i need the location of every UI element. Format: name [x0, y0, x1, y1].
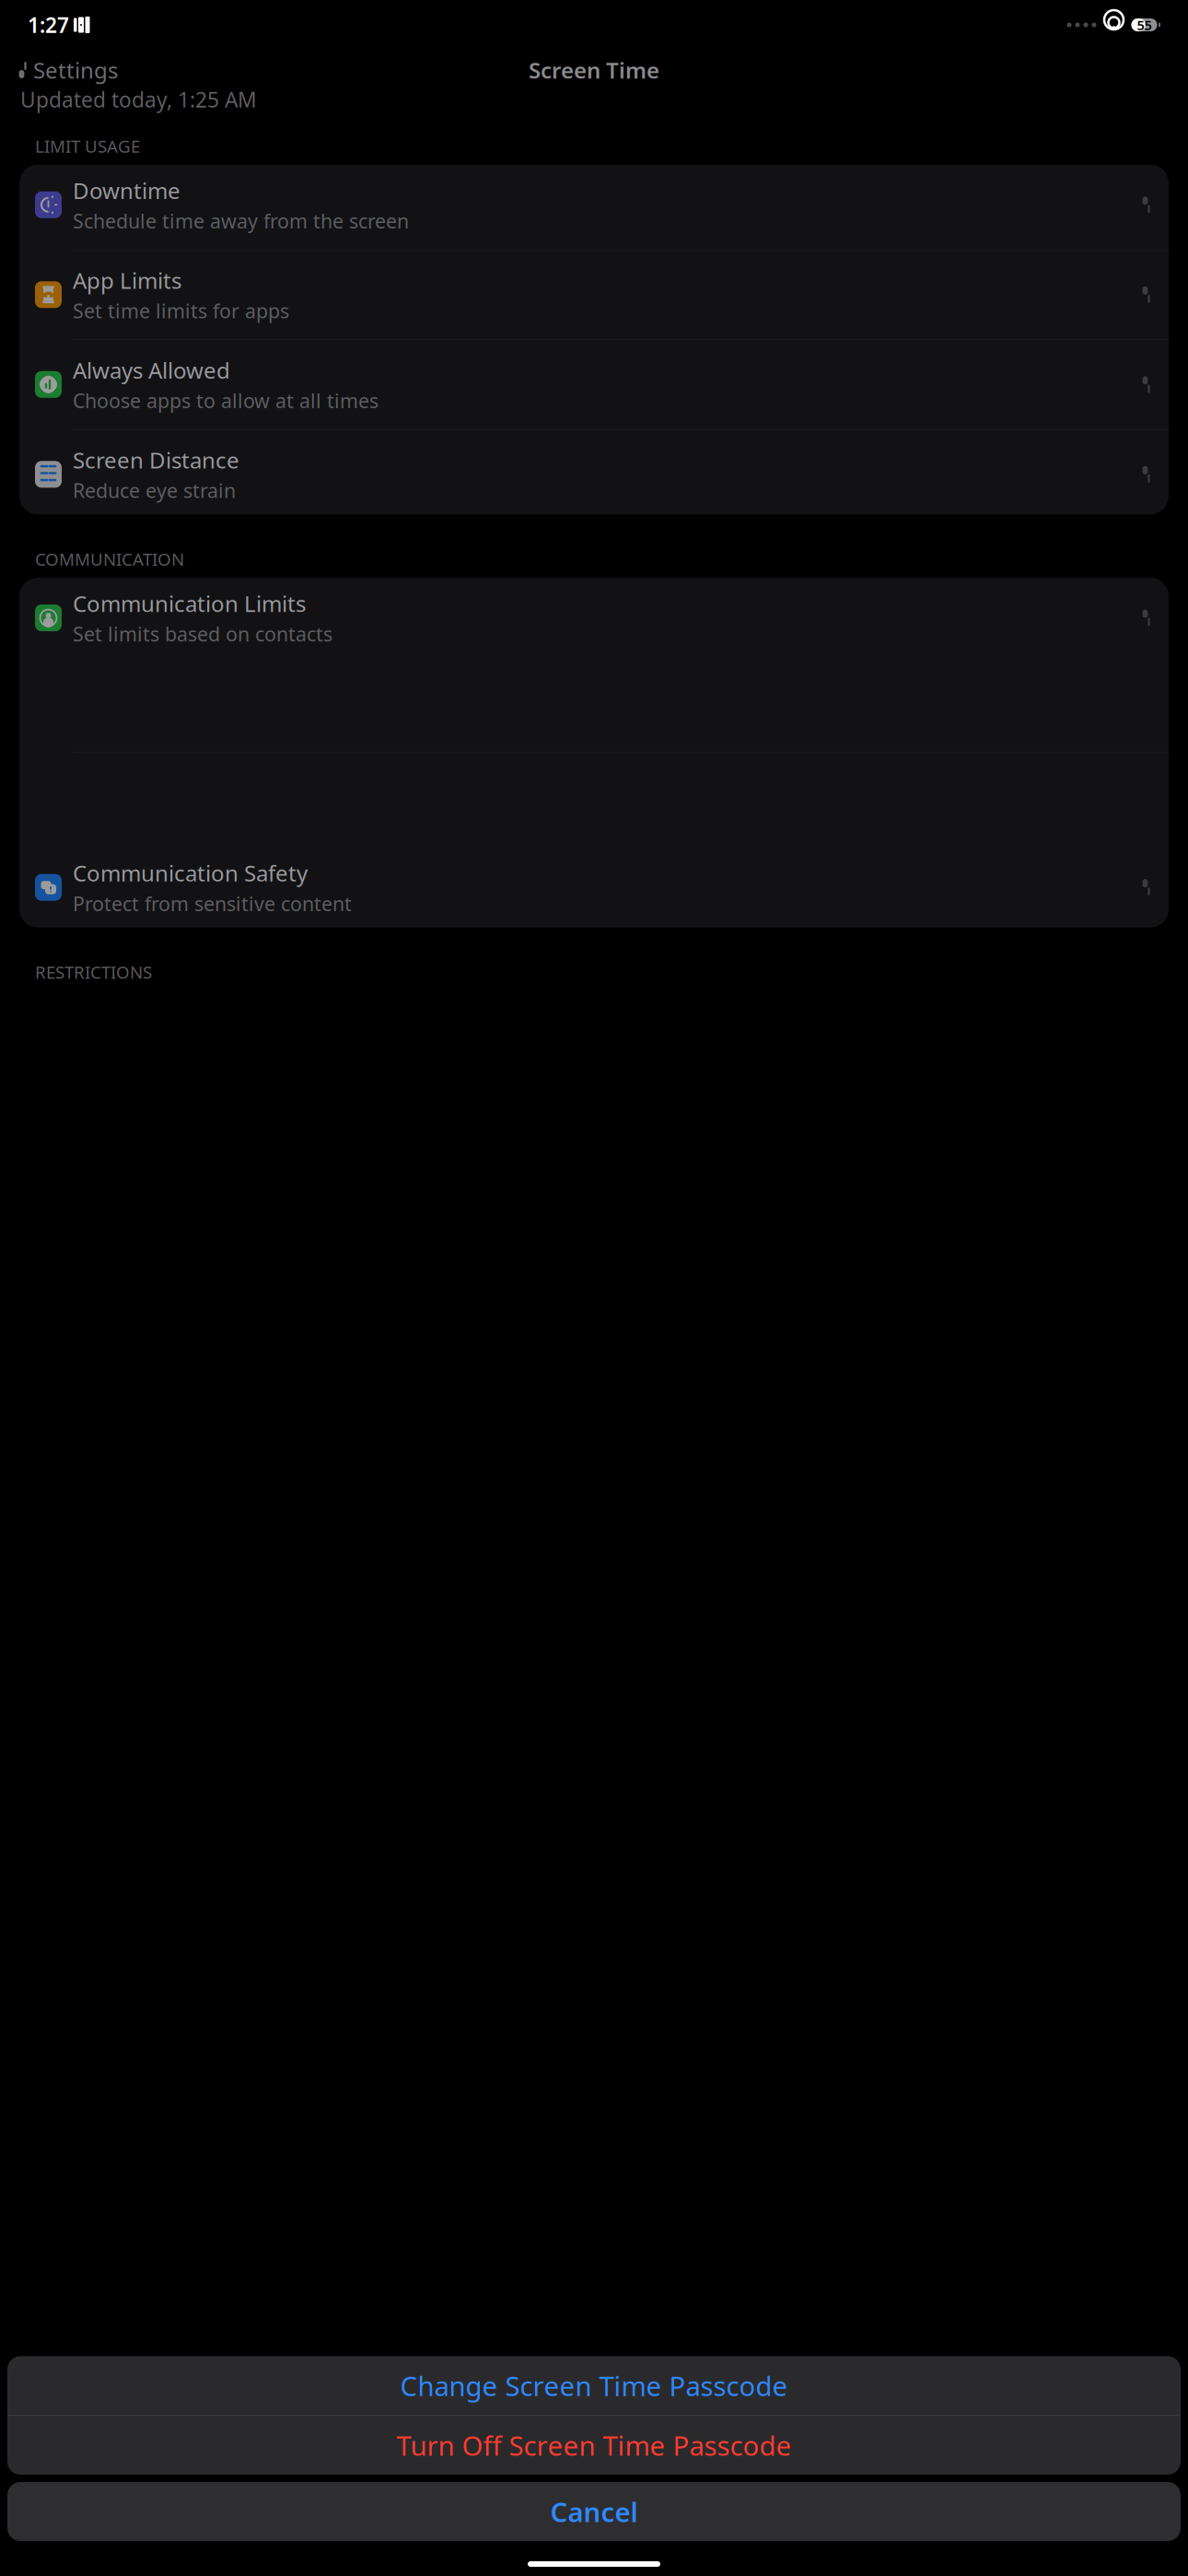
staticText: Change Screen Time Passcode — [400, 2368, 788, 2404]
staticText: Schedule time away from the screen — [73, 208, 409, 234]
staticText: COMMUNICATION — [35, 548, 184, 570]
staticText: RESTRICTIONS — [35, 961, 152, 984]
button[interactable]: Change Screen Time Passcode — [7, 2356, 1181, 2415]
button[interactable]: Always Allowed — [19, 344, 1169, 425]
staticText: Communication Safety — [73, 858, 308, 888]
button[interactable]: Communication Limits — [19, 578, 1169, 658]
staticText: Screen Time — [529, 55, 659, 85]
staticText: LIMIT USAGE — [35, 135, 140, 157]
staticText: Protect from sensitive content — [73, 890, 352, 916]
staticText: Settings — [33, 55, 118, 85]
button[interactable]: Settings — [6, 48, 131, 92]
staticText: Updated today, 1:25 AM — [20, 86, 257, 113]
staticText: Set limits based on contacts — [73, 621, 332, 647]
button[interactable]: Screen Distance — [19, 434, 1169, 514]
staticText: 55 — [1137, 16, 1152, 34]
staticText: Communication Limits — [73, 589, 306, 618]
staticText: Always Allowed — [73, 355, 230, 385]
button[interactable]: Communication Safety — [19, 847, 1169, 927]
staticText: Reduce eye strain — [73, 477, 236, 503]
staticText: Downtime — [73, 176, 181, 205]
staticText: 1:27 — [28, 11, 69, 39]
staticText: Set time limits for apps — [73, 298, 289, 324]
button[interactable]: App Limits — [19, 255, 1169, 335]
staticText: Screen Distance — [73, 445, 239, 475]
staticText: Turn Off Screen Time Passcode — [396, 2427, 792, 2463]
button[interactable]: Downtime — [19, 165, 1169, 245]
staticText: App Limits — [73, 266, 181, 295]
staticText: Choose apps to allow at all times — [73, 388, 379, 414]
staticText: Cancel — [550, 2494, 638, 2529]
button[interactable]: Cancel — [7, 2482, 1181, 2541]
button[interactable]: Turn Off Screen Time Passcode — [7, 2416, 1181, 2475]
